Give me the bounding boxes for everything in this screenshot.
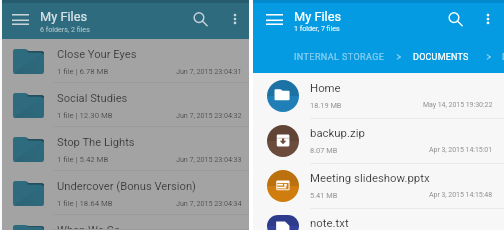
button[interactable]: More options [227,11,243,27]
button[interactable]: Open navigation drawer [12,14,29,25]
staticText: Meeting slideshow.pptx [310,171,504,184]
staticText: May 14, 2015 19:30:22 [423,101,493,109]
button[interactable]: DOCUMENTS [413,52,469,63]
button[interactable]: INTERNAL STORAGE [294,52,385,63]
button[interactable]: Meeting slideshow.pptx [253,163,504,208]
staticText: When We Go [57,224,306,230]
staticText: My Files [40,9,88,24]
button[interactable]: More options [480,11,496,27]
staticText: My Files [294,9,342,24]
staticText: Home [310,81,504,94]
button[interactable]: When We Go [0,215,249,230]
staticText: 18.19 MB [310,101,342,110]
staticText: Apr 3, 2015 14:15:48 [429,191,493,199]
staticText: 5.41 MB [310,191,338,200]
button[interactable]: Home [253,73,504,118]
staticText: 1 file | 6.78 MB [57,67,109,76]
button[interactable]: Undercover (Bonus Version) [0,171,249,215]
staticText: INTERNAL STORAGE [294,52,385,63]
staticText: 1 file | 18.64 MB [57,199,113,208]
staticText: Jun 7, 2015 23:04:32 [176,111,242,119]
button[interactable]: backup.zip [253,118,504,163]
staticText: 1 folder, 7 files [294,24,340,32]
staticText: Undercover (Bonus Version) [57,180,306,193]
staticText: 6 folders, 2 files [40,25,90,33]
staticText: D [502,52,504,63]
staticText: Stop The Lights [57,136,306,149]
staticText: Apr 3, 2015 14:15:01 [429,146,493,154]
staticText: note.txt [310,216,504,229]
button[interactable]: Stop The Lights [0,127,249,171]
staticText: 8.07 MB [310,146,338,155]
staticText: Jun 7, 2015 23:04:33 [176,155,242,163]
staticText: Jun 7, 2015 23:04:34 [176,199,242,207]
button[interactable]: note.txt [253,208,504,230]
staticText: 1 file | 12.30 MB [57,111,113,120]
staticText: backup.zip [310,126,504,139]
staticText: Social Studies [57,92,306,105]
staticText: DOCUMENTS [413,52,469,63]
staticText: Jun 7, 2015 23:04:31 [176,67,242,75]
button[interactable]: Social Studies [0,83,249,127]
staticText: 1 file | 5.42 MB [57,155,109,164]
button[interactable]: Open navigation drawer [266,14,283,25]
staticText: Close Your Eyes [57,48,306,61]
button[interactable]: Search [191,10,210,29]
button[interactable]: Search [446,10,465,29]
button[interactable]: Close Your Eyes [0,39,249,83]
